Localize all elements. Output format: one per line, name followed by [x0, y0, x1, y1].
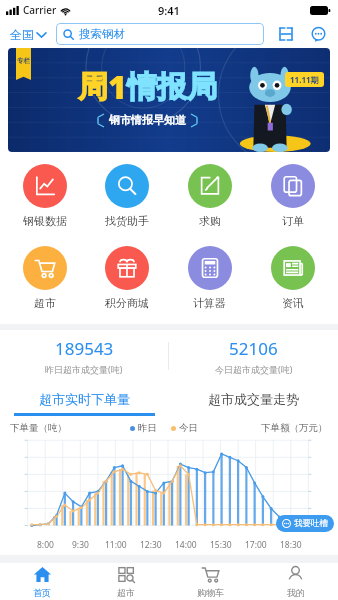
staticText: 11.11期 — [290, 74, 319, 85]
staticText: 14:00 — [175, 539, 197, 551]
staticText: 下单额（万元） — [261, 422, 328, 434]
button[interactable]: 计算器 — [168, 240, 251, 316]
button[interactable]: 订单 — [251, 158, 334, 234]
staticText: 购物车 — [197, 587, 224, 598]
staticText: 首页 — [33, 587, 51, 598]
staticText: 钢市情报早知道 — [109, 113, 186, 127]
staticText: 超市实时下单量 — [39, 391, 130, 407]
staticText: 找货助手 — [105, 214, 149, 228]
staticText: 昨日超市成交量(吨) — [45, 363, 123, 375]
button[interactable]: 搜索钢材 — [56, 23, 264, 45]
staticText: 8:00 — [37, 539, 54, 551]
staticText: 周 — [78, 68, 108, 106]
staticText: 超市 — [34, 296, 56, 310]
staticText: 今日 — [179, 422, 198, 434]
staticText: 积分商城 — [105, 296, 149, 310]
staticText: 钢银数据 — [23, 214, 67, 228]
button[interactable]: 超市 — [4, 240, 86, 316]
button[interactable]: 资讯 — [251, 240, 334, 316]
staticText: 求购 — [199, 214, 221, 228]
button[interactable]: 我的 — [253, 563, 338, 600]
button[interactable]: Scan — [274, 22, 298, 46]
staticText: 9:41 — [158, 3, 180, 18]
staticText: 1 — [108, 65, 127, 109]
button[interactable]: 我要吐槽 — [276, 515, 334, 532]
staticText: 我要吐槽 — [294, 518, 328, 529]
staticText: 18:30 — [280, 539, 302, 551]
button[interactable]: 积分商城 — [86, 240, 168, 316]
staticText: 超市 — [117, 587, 135, 598]
button[interactable]: 求购 — [168, 158, 251, 234]
staticText: 计算器 — [193, 296, 226, 310]
button[interactable]: 超市实时下单量 — [0, 382, 169, 416]
button[interactable]: 找货助手 — [86, 158, 168, 234]
button[interactable]: 全国 — [8, 27, 48, 42]
button[interactable]: 首页 — [0, 563, 84, 600]
staticText: 189543 — [55, 337, 114, 360]
button[interactable]: 钢银数据 — [4, 158, 86, 234]
button[interactable]: 超市成交量走势 — [169, 382, 338, 416]
staticText: 昨日 — [138, 422, 157, 434]
staticText: 情报局 — [127, 68, 217, 106]
button[interactable]: 52106 — [169, 330, 338, 382]
button[interactable]: 189543 — [0, 330, 168, 382]
staticText: 资讯 — [282, 296, 304, 310]
button[interactable]: Messages — [306, 22, 330, 46]
button[interactable]: 专栏 — [8, 48, 330, 152]
staticText: 我的 — [287, 587, 305, 598]
staticText: 搜索钢材 — [79, 27, 125, 41]
button[interactable]: 购物车 — [168, 563, 253, 600]
staticText: 9:30 — [72, 539, 89, 551]
staticText: Carrier — [23, 3, 57, 17]
staticText: 12:30 — [140, 539, 162, 551]
staticText: 订单 — [282, 214, 304, 228]
staticText: 11:00 — [105, 539, 127, 551]
button[interactable]: 超市 — [84, 563, 168, 600]
staticText: 全国 — [10, 27, 34, 42]
staticText: 17:00 — [245, 539, 267, 551]
staticText: 52106 — [229, 337, 278, 360]
staticText: 15:30 — [210, 539, 232, 551]
staticText: 超市成交量走势 — [208, 391, 299, 407]
staticText: 下单量（吨） — [10, 422, 67, 434]
staticText: 专栏 — [17, 57, 30, 65]
staticText: 今日超市成交量(吨) — [215, 363, 293, 375]
